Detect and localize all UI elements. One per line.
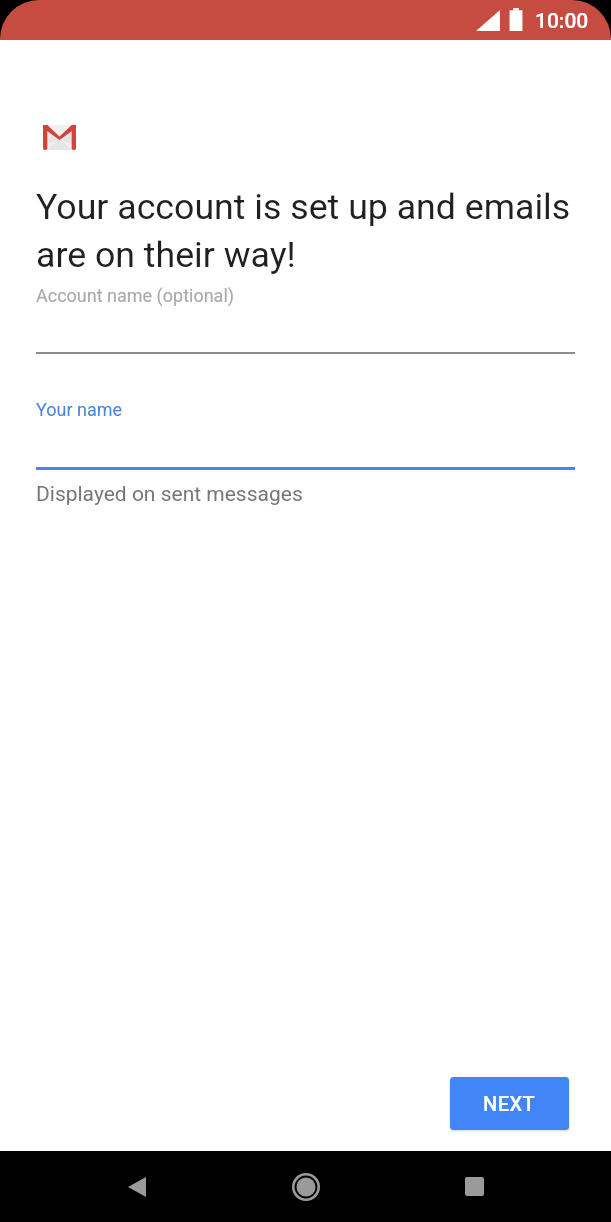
button[interactable]: Home [260, 1151, 351, 1222]
staticText: Displayed on sent messages [36, 482, 303, 507]
button[interactable]: Your name [36, 397, 575, 470]
button[interactable]: Account name (optional) [36, 283, 575, 354]
button[interactable]: Back [91, 1151, 182, 1222]
staticText: Your name [36, 399, 123, 420]
staticText: 10:00 [535, 9, 589, 34]
button[interactable]: Recent apps [429, 1151, 520, 1222]
staticText: NEXT [483, 1092, 536, 1115]
staticText: Account name (optional) [36, 285, 235, 306]
staticText: Your account is set up and emails are on… [36, 186, 584, 278]
button[interactable]: NEXT [450, 1077, 569, 1130]
